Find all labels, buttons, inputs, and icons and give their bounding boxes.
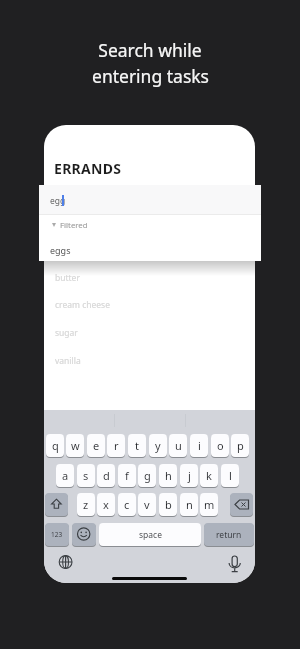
button[interactable]: v <box>138 493 156 516</box>
button[interactable]: n <box>180 493 198 516</box>
staticText: w <box>71 438 80 453</box>
staticText: egg <box>50 195 66 207</box>
button[interactable]: r <box>107 434 125 457</box>
staticText: ERRANDS <box>54 159 122 175</box>
staticText: Search while <box>98 38 202 62</box>
staticText: sugar <box>55 327 78 339</box>
staticText: y <box>155 438 161 453</box>
staticText: f <box>125 468 129 483</box>
button[interactable]: 123 <box>45 523 69 546</box>
button[interactable] <box>39 185 261 214</box>
button[interactable]: m <box>200 493 218 516</box>
button[interactable]: i <box>190 434 208 457</box>
button[interactable]: p <box>231 434 249 457</box>
staticText: n <box>186 497 193 512</box>
button[interactable]: y <box>149 434 167 457</box>
button[interactable]: h <box>159 464 177 487</box>
button[interactable]: c <box>118 493 136 516</box>
button[interactable]: o <box>211 434 229 457</box>
button[interactable] <box>45 493 68 516</box>
staticText: return <box>216 529 242 541</box>
staticText: k <box>206 468 212 483</box>
button[interactable]: e <box>87 434 105 457</box>
staticText: j <box>188 468 191 483</box>
button[interactable]: vanilla <box>55 351 175 371</box>
button[interactable]: return <box>204 523 254 546</box>
button[interactable]: space <box>99 523 201 546</box>
staticText: space <box>139 529 162 541</box>
staticText: d <box>103 468 110 483</box>
button[interactable]: d <box>97 464 115 487</box>
button[interactable]: cream cheese <box>55 295 175 315</box>
button[interactable]: a <box>56 464 74 487</box>
button[interactable]: k <box>200 464 218 487</box>
button[interactable] <box>72 523 96 546</box>
staticText: butter <box>55 272 80 284</box>
button[interactable]: g <box>138 464 156 487</box>
staticText: Filtered <box>60 220 88 231</box>
staticText: vanilla <box>55 355 81 367</box>
staticText: s <box>83 468 89 483</box>
staticText: q <box>52 438 59 453</box>
staticText: t <box>135 438 139 453</box>
button[interactable]: q <box>46 434 64 457</box>
staticText: g <box>144 468 151 483</box>
button[interactable]: s <box>77 464 95 487</box>
staticText: e <box>93 438 100 453</box>
staticText: eggs <box>50 244 71 256</box>
staticText: x <box>103 497 109 512</box>
button[interactable]: b <box>159 493 177 516</box>
button[interactable]: sugar <box>55 323 175 343</box>
button[interactable]: w <box>66 434 84 457</box>
button[interactable]: z <box>77 493 95 516</box>
button[interactable] <box>230 493 253 516</box>
staticText: entering tasks <box>92 64 209 88</box>
staticText: i <box>198 438 201 453</box>
button[interactable]: butter <box>55 268 175 288</box>
staticText: u <box>175 438 182 453</box>
button[interactable]: eggs <box>50 240 250 260</box>
staticText: p <box>237 438 244 453</box>
staticText: a <box>62 468 69 483</box>
button[interactable]: j <box>180 464 198 487</box>
staticText: l <box>229 468 232 483</box>
staticText: z <box>83 497 89 512</box>
button[interactable]: l <box>221 464 239 487</box>
button[interactable]: u <box>169 434 187 457</box>
staticText: 123 <box>51 530 63 539</box>
button[interactable]: x <box>97 493 115 516</box>
staticText: r <box>114 438 119 453</box>
staticText: cream cheese <box>55 299 110 311</box>
staticText: b <box>165 497 172 512</box>
button[interactable]: t <box>128 434 146 457</box>
staticText: m <box>204 497 215 512</box>
staticText: c <box>124 497 130 512</box>
staticText: v <box>144 497 150 512</box>
button[interactable]: f <box>118 464 136 487</box>
staticText: o <box>217 438 224 453</box>
staticText: h <box>165 468 172 483</box>
